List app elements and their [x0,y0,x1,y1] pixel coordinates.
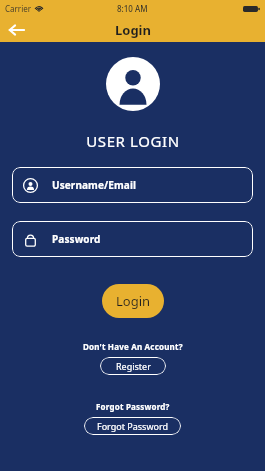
staticText: Carrier [5,3,32,14]
button[interactable]: Register [100,357,166,375]
staticText: Don't Have An Account? [83,341,183,352]
staticText: Forgot Password [97,420,169,432]
staticText: USER LOGIN [86,131,180,151]
button[interactable]: Password [12,221,253,257]
staticText: Login [115,21,151,39]
staticText: Password [52,232,101,246]
staticText: 8:10 AM [117,3,148,14]
button[interactable]: Username/Email [12,167,253,203]
button[interactable]: Login [102,284,164,318]
staticText: Username/Email [52,178,137,192]
button[interactable]: Forgot Password [84,417,181,435]
staticText: Forgot Password? [96,401,170,412]
staticText: Login [116,292,151,310]
staticText: Register [116,360,151,372]
button[interactable]: Back [0,17,32,42]
